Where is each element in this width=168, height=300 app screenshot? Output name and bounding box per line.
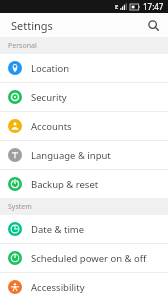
staticText: Backup & reset [31, 178, 99, 191]
button[interactable]: Scheduled power on & off [0, 244, 168, 272]
button[interactable]: Security [0, 83, 168, 111]
staticText: Location [31, 62, 70, 75]
staticText: Scheduled power on & off [31, 252, 147, 265]
staticText: Accounts [31, 120, 72, 133]
staticText: Security [31, 91, 67, 104]
button[interactable]: Backup & reset [0, 170, 168, 198]
staticText: Personal [8, 41, 37, 51]
button[interactable]: Date & time [0, 215, 168, 243]
staticText: Accessibility [31, 281, 85, 294]
staticText: Date & time [31, 223, 85, 236]
button[interactable]: Location [0, 54, 168, 82]
staticText: 17:47 [143, 1, 164, 12]
staticText: E [115, 3, 119, 11]
staticText: Language & input [31, 149, 111, 162]
button[interactable]: Search [144, 16, 162, 34]
button[interactable]: Accessibility [0, 273, 168, 300]
button[interactable]: Accounts [0, 112, 168, 140]
button[interactable]: Language & input [0, 141, 168, 169]
staticText: System [8, 202, 32, 212]
staticText: Settings [11, 18, 53, 33]
